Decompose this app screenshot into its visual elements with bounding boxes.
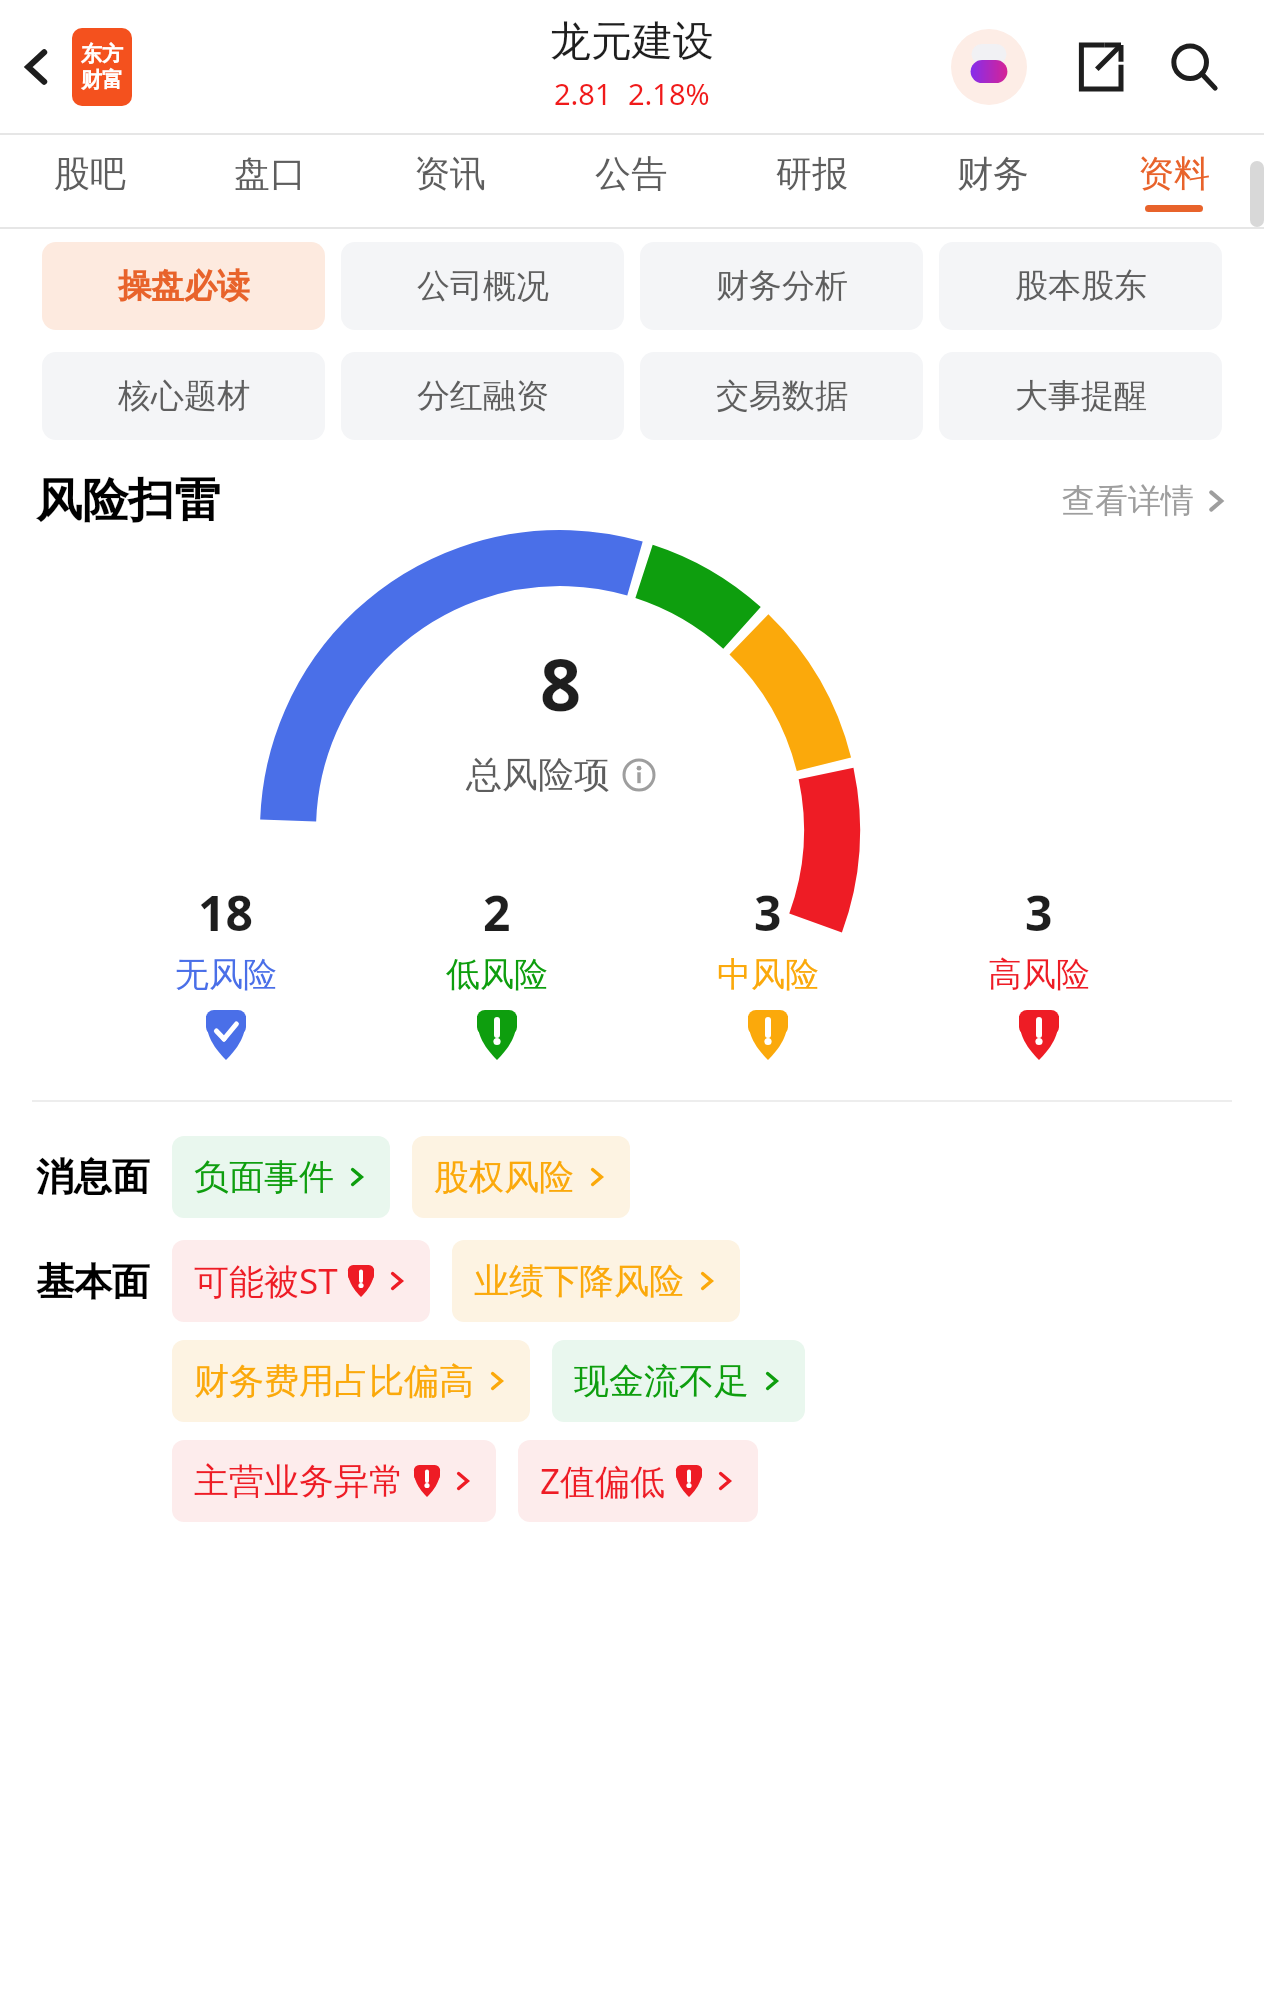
staticText: 2.18% bbox=[628, 74, 710, 113]
staticText: 低风险 bbox=[446, 953, 548, 996]
button[interactable]: 大事提醒 bbox=[939, 352, 1222, 440]
staticText: 资料 bbox=[1138, 151, 1210, 196]
button[interactable]: Share bbox=[1064, 32, 1134, 102]
staticText: 东方 bbox=[81, 41, 123, 67]
staticText: 消息面 bbox=[36, 1153, 150, 1201]
button[interactable]: 股吧 bbox=[0, 135, 180, 227]
staticText: 股权风险 bbox=[434, 1155, 574, 1199]
button[interactable]: 分红融资 bbox=[341, 352, 624, 440]
staticText: 盘口 bbox=[234, 151, 306, 196]
staticText: 现金流不足 bbox=[574, 1359, 749, 1403]
staticText: 核心题材 bbox=[118, 375, 250, 417]
button[interactable]: 查看详情 bbox=[1062, 480, 1228, 522]
staticText: 公司概况 bbox=[417, 265, 549, 307]
button[interactable]: 盘口 bbox=[180, 135, 360, 227]
staticText: 3 bbox=[754, 880, 782, 945]
staticText: 财务费用占比偏高 bbox=[194, 1359, 474, 1403]
button[interactable]: 负面事件 bbox=[172, 1136, 390, 1218]
button[interactable]: Search bbox=[1154, 27, 1234, 107]
button[interactable]: 18 bbox=[90, 880, 361, 1060]
button[interactable]: 核心题材 bbox=[42, 352, 325, 440]
button[interactable]: 3 bbox=[632, 880, 903, 1060]
staticText: 业绩下降风险 bbox=[474, 1259, 684, 1303]
staticText: 股本股东 bbox=[1015, 265, 1147, 307]
staticText: 3 bbox=[1025, 880, 1053, 945]
staticText: 中风险 bbox=[717, 953, 819, 996]
button[interactable]: 财务 bbox=[902, 135, 1083, 227]
staticText: 无风险 bbox=[175, 953, 277, 996]
staticText: 2 bbox=[483, 880, 511, 945]
button[interactable]: 研报 bbox=[721, 135, 902, 227]
button[interactable]: 股权风险 bbox=[412, 1136, 630, 1218]
staticText: 负面事件 bbox=[194, 1155, 334, 1199]
staticText: 财务 bbox=[957, 151, 1029, 196]
staticText: 股吧 bbox=[54, 151, 126, 196]
button[interactable]: 财务分析 bbox=[640, 242, 923, 330]
button[interactable]: 现金流不足 bbox=[552, 1340, 805, 1422]
staticText: 操盘必读 bbox=[118, 265, 250, 307]
staticText: 2.81 bbox=[554, 74, 612, 113]
button[interactable]: 股本股东 bbox=[939, 242, 1222, 330]
staticText: 查看详情 bbox=[1062, 480, 1194, 522]
staticText: 资讯 bbox=[414, 151, 486, 196]
staticText: 8 bbox=[540, 634, 582, 732]
staticText: 研报 bbox=[776, 151, 848, 196]
button[interactable]: Z值偏低 bbox=[518, 1440, 758, 1522]
staticText: 财务分析 bbox=[716, 265, 848, 307]
staticText: 分红融资 bbox=[417, 375, 549, 417]
staticText: 18 bbox=[198, 880, 253, 945]
button[interactable]: 交易数据 bbox=[640, 352, 923, 440]
button[interactable]: Back bbox=[6, 36, 68, 98]
button[interactable]: 操盘必读 bbox=[42, 242, 325, 330]
button[interactable]: 财务费用占比偏高 bbox=[172, 1340, 530, 1422]
staticText: 财富 bbox=[81, 67, 123, 93]
button[interactable]: AI assistant bbox=[951, 29, 1027, 105]
button[interactable]: 公告 bbox=[540, 135, 721, 227]
staticText: 可能被ST bbox=[194, 1257, 338, 1305]
button[interactable]: 2 bbox=[361, 880, 632, 1060]
staticText: 高风险 bbox=[988, 953, 1090, 996]
button[interactable]: 资料 bbox=[1083, 135, 1264, 227]
staticText: 风险扫雷 bbox=[36, 472, 220, 530]
staticText: 公告 bbox=[595, 151, 667, 196]
staticText: 主营业务异常 bbox=[194, 1459, 404, 1503]
button[interactable]: 公司概况 bbox=[341, 242, 624, 330]
staticText: 大事提醒 bbox=[1015, 375, 1147, 417]
staticText: 龙元建设 bbox=[550, 16, 714, 68]
staticText: Z值偏低 bbox=[540, 1457, 666, 1505]
staticText: 交易数据 bbox=[716, 375, 848, 417]
button[interactable]: 3 bbox=[903, 880, 1174, 1060]
button[interactable]: East Money bbox=[72, 28, 132, 106]
button[interactable]: 可能被ST bbox=[172, 1240, 430, 1322]
button[interactable]: 主营业务异常 bbox=[172, 1440, 496, 1522]
staticText: 总风险项 bbox=[466, 752, 610, 797]
button[interactable]: 业绩下降风险 bbox=[452, 1240, 740, 1322]
button[interactable]: 资讯 bbox=[360, 135, 540, 227]
staticText: 基本面 bbox=[36, 1258, 150, 1306]
